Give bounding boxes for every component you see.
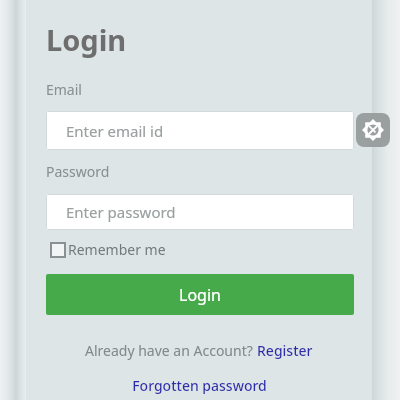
button[interactable]: Login — [46, 274, 354, 315]
staticText: Remember me — [68, 240, 166, 259]
button[interactable]: Remember me — [50, 240, 166, 259]
staticText: Register — [257, 341, 313, 360]
staticText: Email — [46, 80, 82, 99]
staticText: Login — [179, 284, 221, 306]
button[interactable]: Forgotten password — [132, 376, 267, 395]
button[interactable]: Register — [257, 341, 313, 360]
button[interactable]: Settings — [356, 113, 390, 147]
button[interactable]: Enter password — [46, 194, 354, 230]
button[interactable]: Enter email id — [46, 111, 354, 150]
staticText: Enter email id — [66, 121, 164, 141]
staticText: Already have an Account? — [85, 341, 257, 360]
staticText: Password — [46, 162, 110, 181]
staticText: Login — [46, 20, 127, 59]
staticText: Forgotten password — [132, 376, 267, 395]
staticText: Enter password — [66, 202, 176, 222]
